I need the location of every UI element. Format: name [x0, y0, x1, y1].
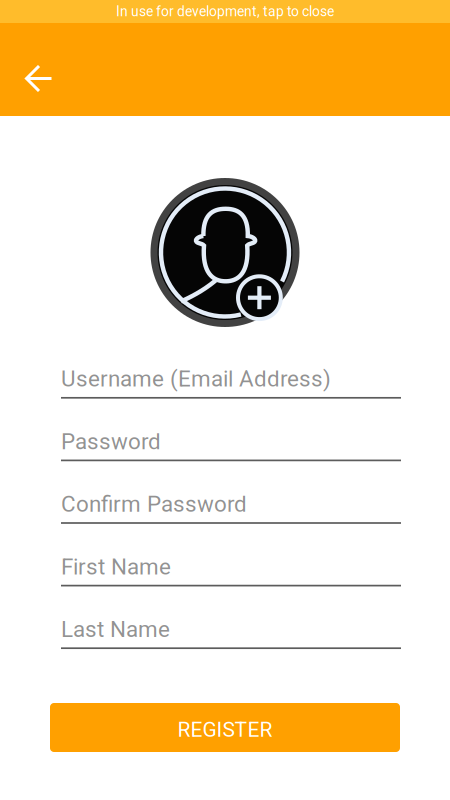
staticText: Last Name [61, 616, 170, 642]
staticText: REGISTER [177, 717, 272, 742]
staticText: In use for development, tap to close [116, 3, 334, 20]
staticText: Password [61, 428, 161, 455]
staticText: Confirm Password [61, 491, 247, 517]
button[interactable]: Back [11, 41, 67, 97]
staticText: Username (Email Address) [61, 366, 331, 392]
staticText: First Name [61, 554, 171, 580]
button[interactable]: REGISTER [50, 703, 400, 752]
button[interactable]: In use for development, tap to close [0, 0, 450, 23]
